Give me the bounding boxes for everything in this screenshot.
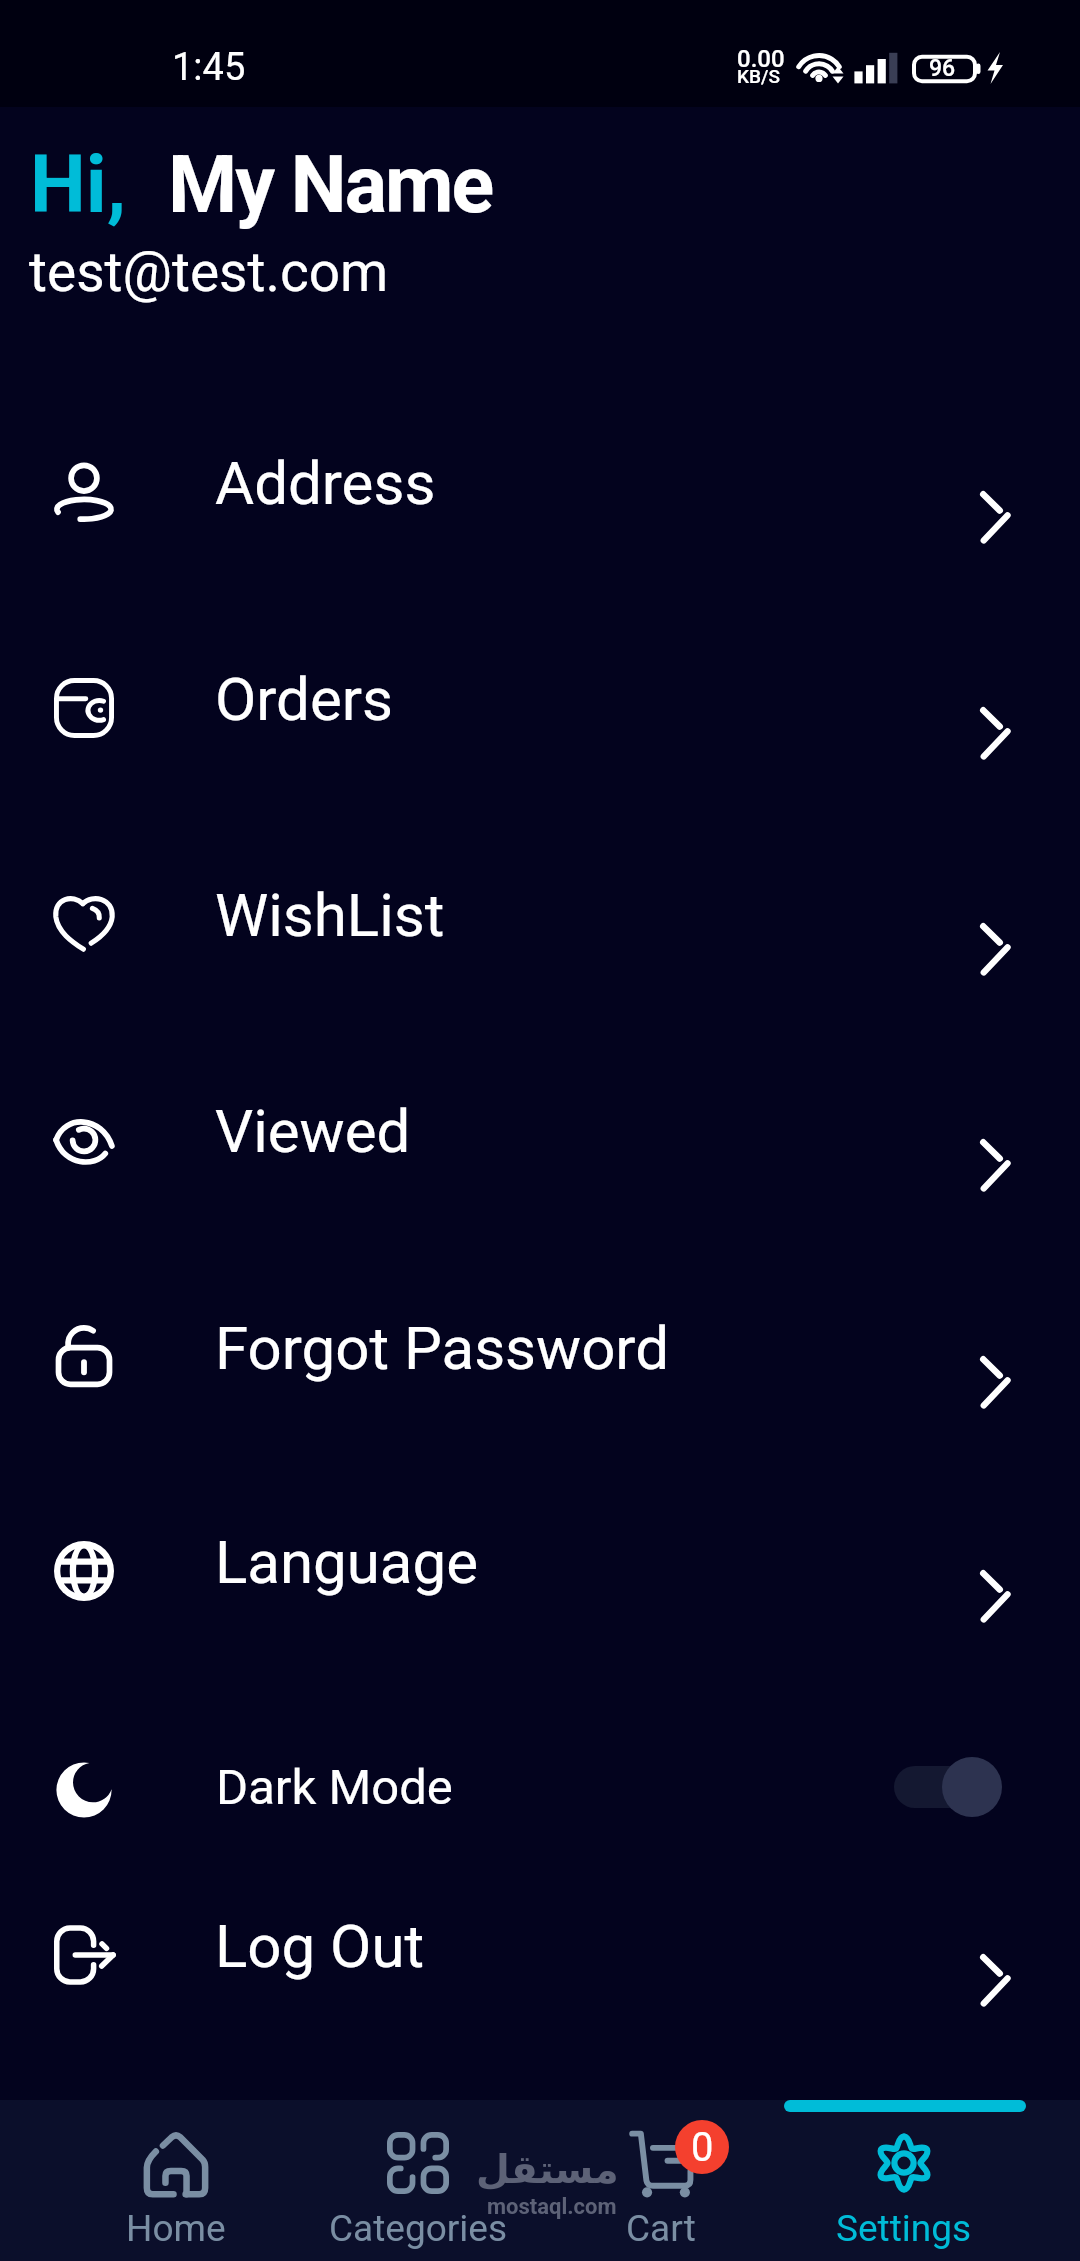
staticText: Settings — [836, 2207, 972, 2250]
staticText: Hi, — [30, 139, 127, 232]
button[interactable]: Log Out — [0, 1865, 1080, 2045]
staticText: test@test.com — [29, 240, 389, 304]
staticText: Viewed — [215, 1096, 411, 1166]
button[interactable]: Dark Mode — [0, 1683, 1080, 1897]
button[interactable]: Settings — [782, 2100, 1025, 2250]
button[interactable]: WishList — [0, 817, 1080, 1031]
staticText: Cart — [626, 2207, 696, 2250]
staticText: My Name — [168, 139, 493, 232]
staticText: Home — [126, 2207, 226, 2250]
staticText: Orders — [215, 664, 394, 734]
button[interactable]: Address — [0, 385, 1080, 599]
button[interactable]: Forgot Password — [0, 1250, 1080, 1464]
staticText: 96 — [929, 55, 956, 82]
staticText: 0.00 — [737, 45, 785, 73]
staticText: Dark Mode — [216, 1759, 453, 1816]
staticText: Forgot Password — [215, 1313, 669, 1383]
staticText: Language — [215, 1527, 478, 1597]
staticText: Log Out — [215, 1911, 425, 1981]
staticText: مستقل — [476, 2147, 619, 2192]
button[interactable]: Language — [0, 1464, 1080, 1678]
button[interactable]: Viewed — [0, 1033, 1080, 1247]
button[interactable]: Home — [55, 2100, 297, 2250]
button[interactable]: Dark mode toggle — [894, 1756, 1006, 1818]
button[interactable]: Orders — [0, 601, 1080, 815]
staticText: KB/S — [737, 65, 780, 87]
button[interactable]: 0 — [539, 2100, 782, 2250]
staticText: Address — [215, 448, 436, 518]
staticText: 1:45 — [172, 45, 246, 90]
staticText: WishList — [215, 880, 445, 950]
staticText: 0 — [691, 2124, 714, 2171]
staticText: mostaql.com — [487, 2194, 617, 2220]
staticText: Categories — [329, 2207, 508, 2250]
button[interactable]: Categories — [297, 2100, 539, 2250]
